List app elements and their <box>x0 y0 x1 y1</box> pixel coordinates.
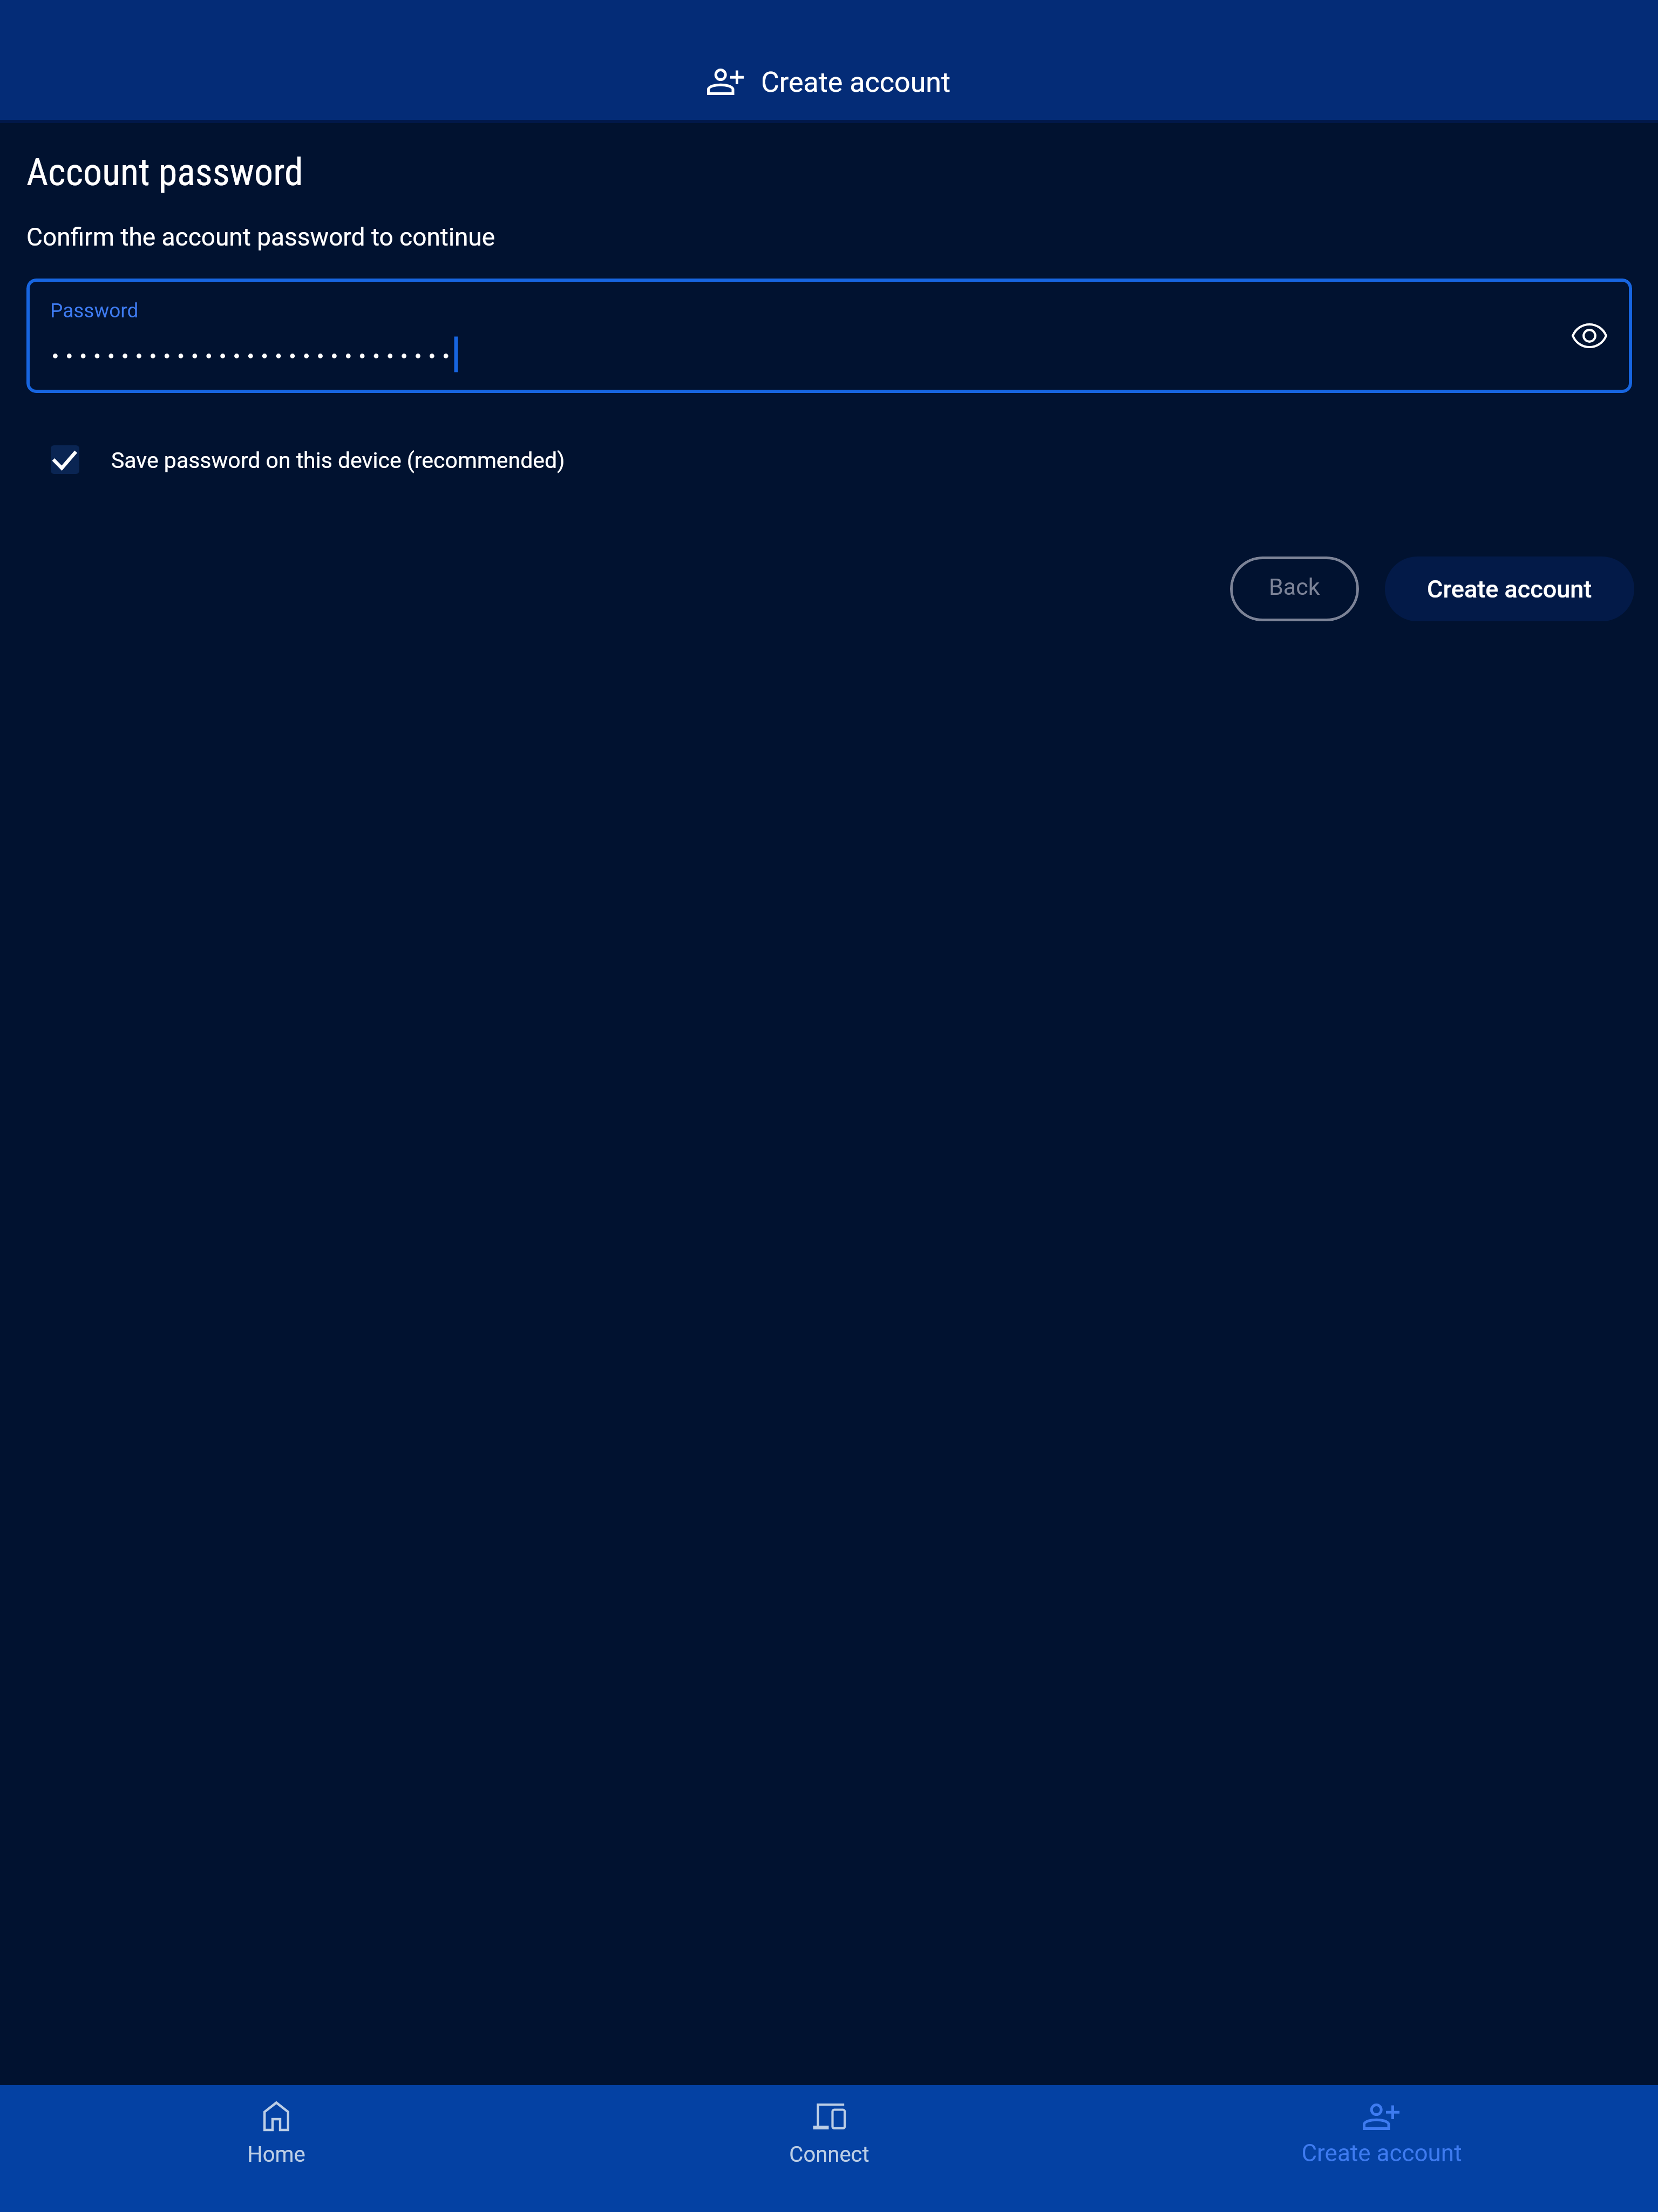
button[interactable]: Home <box>0 2085 553 2115</box>
staticText: Home <box>247 2142 305 2167</box>
staticText: Confirm the account password to continue <box>26 222 495 252</box>
button[interactable]: Save password on this device (recommende… <box>51 445 565 474</box>
staticText: Create account <box>761 66 951 99</box>
staticText: Save password on this device (recommende… <box>111 447 565 473</box>
staticText: Create account <box>1301 2139 1462 2167</box>
staticText: Account password <box>26 150 303 194</box>
staticText: Password <box>50 299 139 322</box>
button[interactable]: Back <box>1230 557 1359 621</box>
button[interactable]: Create account <box>1105 2085 1658 2115</box>
button[interactable]: Password <box>26 279 1632 393</box>
staticText: Create account <box>1427 575 1592 603</box>
button[interactable]: Connect <box>553 2085 1105 2115</box>
button[interactable]: Create account <box>1385 557 1634 621</box>
staticText: Connect <box>789 2142 869 2167</box>
button[interactable]: Create account <box>708 66 951 99</box>
staticText: Back <box>1269 573 1320 600</box>
other: Create account <box>708 69 744 94</box>
button[interactable]: Show password <box>1566 313 1613 359</box>
